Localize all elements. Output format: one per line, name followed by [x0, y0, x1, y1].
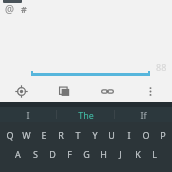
staticText: # — [21, 3, 27, 15]
button[interactable]: L — [146, 144, 163, 164]
staticText: H — [100, 148, 107, 160]
staticText: Y — [92, 129, 98, 141]
button[interactable]: Y — [86, 125, 103, 144]
staticText: If — [140, 109, 147, 121]
button[interactable]: P — [154, 125, 171, 144]
staticText: F — [67, 148, 72, 160]
button[interactable]: D — [44, 144, 61, 164]
button[interactable]: Add photo — [43, 80, 86, 102]
button[interactable]: Location — [0, 80, 43, 102]
button[interactable]: A — [9, 144, 27, 164]
button[interactable]: S — [27, 144, 44, 164]
staticText: O — [142, 129, 150, 141]
staticText: 88 — [156, 61, 167, 73]
button[interactable]: R — [52, 125, 69, 144]
staticText: K — [135, 148, 141, 160]
staticText: J — [119, 148, 122, 160]
button[interactable]: W — [18, 125, 35, 144]
button[interactable]: If — [115, 107, 172, 122]
button[interactable]: H — [95, 144, 112, 164]
button[interactable]: E — [35, 125, 52, 144]
staticText: T — [75, 129, 81, 141]
button[interactable]: Q — [1, 125, 18, 144]
button[interactable]: O — [137, 125, 154, 144]
staticText: D — [49, 148, 56, 160]
staticText: R — [58, 129, 64, 141]
staticText: P — [160, 129, 166, 141]
button[interactable]: F — [61, 144, 78, 164]
button[interactable]: The — [57, 107, 114, 122]
staticText: L — [152, 148, 157, 160]
button[interactable]: J — [112, 144, 129, 164]
button[interactable]: Hashtag — [17, 2, 30, 15]
button[interactable]: Mention — [3, 2, 16, 15]
button[interactable]: More options — [129, 80, 172, 102]
button[interactable]: I — [0, 107, 56, 122]
staticText: The — [78, 109, 94, 121]
staticText: @ — [5, 2, 14, 15]
staticText: G — [83, 148, 90, 160]
staticText: U — [108, 129, 115, 141]
button[interactable]: K — [129, 144, 146, 164]
staticText: I — [127, 129, 131, 141]
staticText: S — [33, 148, 38, 160]
button[interactable]: Add link — [86, 80, 129, 102]
button[interactable]: T — [69, 125, 86, 144]
staticText: A — [15, 148, 21, 160]
button[interactable]: I — [120, 125, 137, 144]
staticText: W — [22, 129, 31, 141]
staticText: E — [41, 129, 47, 141]
button[interactable]: U — [103, 125, 120, 144]
button[interactable]: G — [78, 144, 95, 164]
staticText: I — [26, 109, 30, 121]
staticText: Q — [6, 129, 14, 141]
